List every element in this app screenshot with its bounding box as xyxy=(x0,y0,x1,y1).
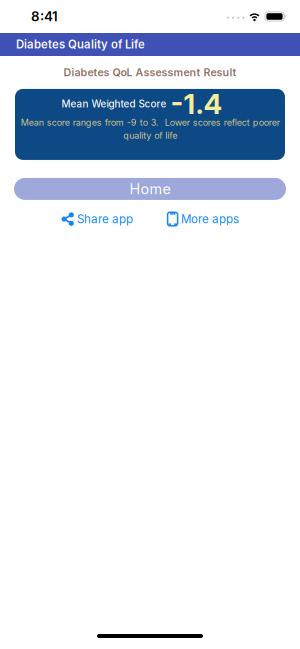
staticText: Mean Weighted Score xyxy=(61,98,166,110)
staticText: More apps xyxy=(181,212,239,226)
staticText: 8:41 xyxy=(31,8,58,24)
staticText: Diabetes QoL Assessment Result xyxy=(63,66,236,79)
button[interactable]: Home xyxy=(14,178,286,200)
button[interactable]: More apps xyxy=(167,212,239,226)
button[interactable]: Share app xyxy=(61,212,133,226)
staticText: Mean score ranges from -9 to 3. Lower sc… xyxy=(20,117,279,141)
staticText: Diabetes Quality of Life xyxy=(16,38,145,51)
staticText: Share app xyxy=(77,212,133,226)
staticText: Home xyxy=(129,180,170,198)
staticText: -1.4 xyxy=(170,87,222,121)
